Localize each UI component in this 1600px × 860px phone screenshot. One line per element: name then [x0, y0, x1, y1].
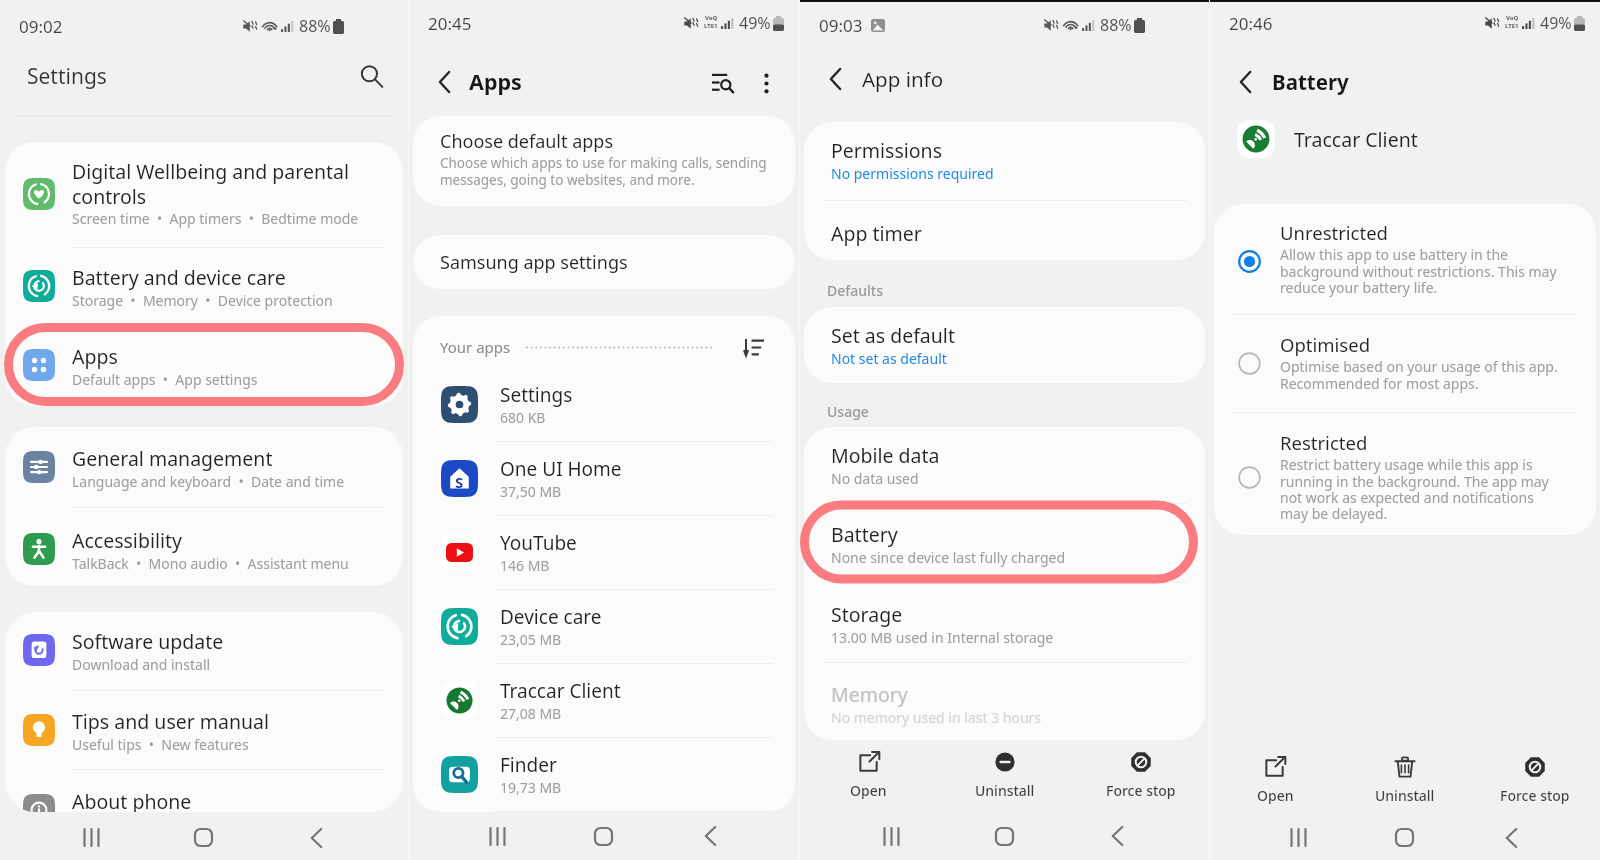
staticText: Permissions: [831, 137, 943, 164]
button[interactable]: YouTube: [413, 516, 795, 589]
button[interactable]: Sort order: [737, 330, 771, 364]
button[interactable]: Home: [550, 812, 657, 860]
staticText: Open: [1257, 786, 1294, 805]
button[interactable]: Back: [657, 812, 764, 860]
button[interactable]: Optimised: [1214, 315, 1596, 412]
staticText: Apps: [72, 343, 118, 370]
staticText: S: [455, 472, 464, 492]
button[interactable]: Uninstall: [937, 738, 1073, 812]
button[interactable]: Tips and user manual: [5, 691, 403, 769]
button[interactable]: Navigate up: [424, 62, 464, 102]
button[interactable]: Device care: [413, 590, 795, 663]
button[interactable]: Search apps: [698, 61, 743, 103]
button[interactable]: Unrestricted: [1214, 204, 1596, 314]
button[interactable]: Navigate up: [1225, 62, 1265, 102]
staticText: Storage: [831, 601, 903, 628]
staticText: App info: [862, 65, 944, 93]
button[interactable]: Recent apps: [1245, 815, 1351, 860]
button[interactable]: Digital Wellbeing and parental controls: [5, 142, 403, 247]
button[interactable]: Back: [1458, 815, 1565, 860]
button[interactable]: Settings: [413, 368, 795, 441]
button[interactable]: Back: [260, 815, 373, 860]
button[interactable]: Open: [800, 738, 937, 812]
staticText: App timer: [831, 220, 922, 247]
staticText: None since device last fully charged: [831, 548, 1066, 567]
staticText: Finder: [500, 752, 557, 778]
staticText: Choose default apps: [440, 129, 614, 154]
staticText: General management: [72, 445, 273, 472]
staticText: Choose which apps to use for making call…: [440, 154, 767, 189]
button[interactable]: Open: [1210, 741, 1340, 815]
staticText: Uninstall: [975, 781, 1035, 800]
staticText: Tips and user manual: [72, 708, 270, 735]
button[interactable]: Uninstall: [1340, 741, 1470, 815]
button[interactable]: Recent apps: [835, 812, 948, 860]
staticText: Not set as default: [831, 349, 947, 368]
button[interactable]: Recent apps: [444, 812, 550, 860]
staticText: Traccar Client: [500, 678, 621, 704]
button[interactable]: App timer: [804, 201, 1205, 260]
staticText: Settings: [27, 62, 350, 91]
staticText: Restricted: [1280, 430, 1368, 455]
button[interactable]: More options: [743, 61, 790, 103]
button[interactable]: Navigate up: [815, 59, 855, 99]
button[interactable]: Traccar Client: [413, 664, 795, 737]
button[interactable]: Apps: [5, 327, 403, 406]
button[interactable]: Set as default: [804, 307, 1205, 383]
button[interactable]: Storage: [804, 583, 1205, 662]
button[interactable]: Samsung app settings: [413, 235, 795, 289]
staticText: 20:46: [1229, 12, 1273, 35]
staticText: About phone: [72, 788, 192, 812]
button[interactable]: Battery: [804, 504, 1205, 582]
staticText: Restrict battery usage while this app is…: [1280, 455, 1549, 523]
staticText: 09:03: [819, 14, 863, 37]
button[interactable]: Back: [1061, 812, 1174, 860]
staticText: Your apps: [440, 337, 511, 357]
staticText: 88%: [1100, 14, 1132, 36]
staticText: Digital Wellbeing and parental controls: [72, 158, 350, 209]
staticText: Battery and device care: [72, 264, 286, 291]
button[interactable]: Force stop: [1073, 738, 1209, 812]
button[interactable]: Force stop: [1470, 741, 1600, 815]
button[interactable]: Finder: [413, 738, 795, 811]
staticText: 19,73 MB: [500, 778, 562, 797]
staticText: 09:02: [19, 15, 63, 38]
button[interactable]: Software update: [5, 612, 403, 690]
staticText: Force stop: [1500, 786, 1570, 805]
button[interactable]: Home: [147, 815, 260, 860]
staticText: LTE1: [704, 22, 718, 30]
staticText: Settings: [500, 382, 573, 408]
staticText: TalkBack • Mono audio • Assistant menu: [72, 554, 349, 573]
staticText: Optimised: [1280, 332, 1371, 357]
button[interactable]: Home: [1351, 815, 1458, 860]
button[interactable]: Mobile data: [804, 427, 1205, 503]
staticText: Force stop: [1106, 781, 1176, 800]
button[interactable]: Battery and device care: [5, 248, 403, 327]
button[interactable]: Memory: [804, 663, 1205, 740]
staticText: 146 MB: [500, 556, 550, 575]
staticText: Battery: [1272, 68, 1349, 96]
button[interactable]: Restricted: [1214, 413, 1596, 535]
button[interactable]: Search settings: [350, 55, 392, 97]
button[interactable]: Recent apps: [35, 815, 147, 860]
button[interactable]: General management: [5, 427, 403, 507]
staticText: Storage • Memory • Device protection: [72, 291, 333, 310]
staticText: 20:45: [428, 12, 472, 35]
staticText: 49%: [1540, 12, 1572, 34]
button[interactable]: About phone: [5, 770, 403, 812]
button[interactable]: S: [413, 442, 795, 515]
staticText: 88%: [299, 15, 331, 37]
staticText: Memory: [831, 681, 908, 708]
button[interactable]: Choose default apps: [413, 116, 795, 206]
staticText: Download and install: [72, 655, 211, 674]
staticText: Defaults: [827, 281, 883, 300]
staticText: Device care: [500, 604, 602, 630]
staticText: Accessibility: [72, 527, 182, 554]
button[interactable]: Permissions: [804, 122, 1205, 200]
button[interactable]: Accessibility: [5, 508, 403, 586]
staticText: 680 KB: [500, 408, 546, 427]
button[interactable]: Home: [948, 812, 1061, 860]
staticText: Allow this app to use battery in the bac…: [1280, 245, 1557, 297]
staticText: Usage: [827, 402, 869, 421]
staticText: Set as default: [831, 322, 955, 349]
